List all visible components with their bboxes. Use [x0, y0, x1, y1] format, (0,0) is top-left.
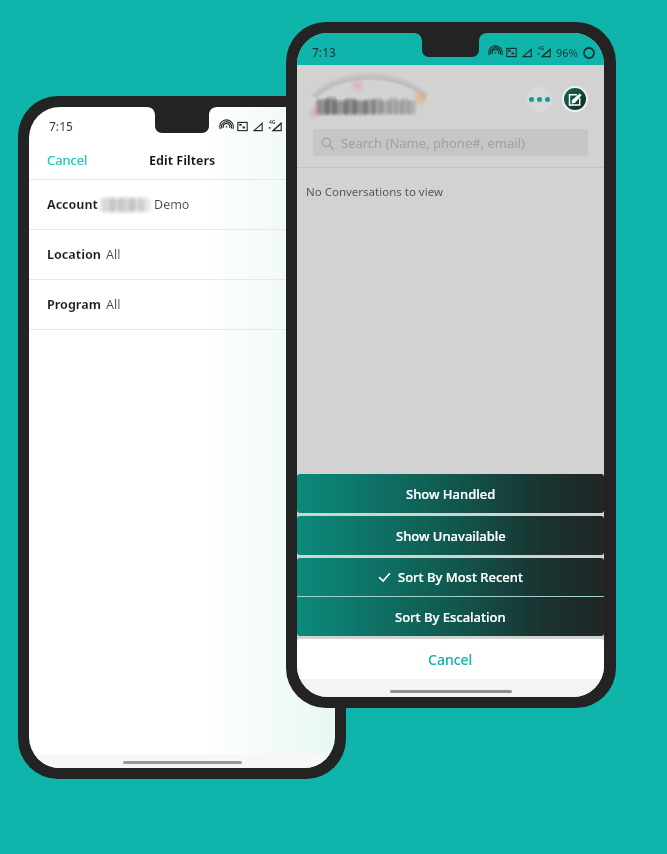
button[interactable]: Sort By Escalation [297, 597, 604, 636]
button[interactable]: More options [527, 87, 552, 112]
staticText: 7:13 [312, 44, 336, 60]
button[interactable]: Program [29, 280, 335, 329]
staticText: All [106, 246, 121, 263]
staticText: Show Handled [406, 485, 496, 503]
button[interactable]: Search (Name, phone#, email) [313, 129, 588, 156]
button[interactable]: Account [29, 180, 335, 229]
staticText: Demo [154, 196, 190, 213]
staticText: Sort By Most Recent [398, 568, 523, 586]
button[interactable]: Location [29, 230, 335, 279]
staticText: 4G [269, 119, 276, 126]
button[interactable]: Show Unavailable [297, 516, 604, 555]
staticText: Cancel [428, 650, 473, 669]
button[interactable]: Compose new message [564, 88, 586, 110]
staticText: Account [47, 196, 99, 213]
button[interactable]: Sort By Most Recent [297, 558, 604, 596]
staticText: Program [47, 296, 101, 313]
staticText: All [106, 296, 121, 313]
button[interactable]: Show Handled [297, 474, 604, 513]
staticText: 96% [556, 45, 578, 60]
staticText: 7:15 [49, 118, 73, 134]
button[interactable]: Cancel [47, 151, 88, 169]
staticText: Show Unavailable [396, 527, 506, 545]
staticText: 96% [287, 119, 309, 134]
staticText: Location [47, 246, 101, 263]
button[interactable]: Cancel [297, 639, 604, 679]
staticText: Search (Name, phone#, email) [341, 134, 525, 152]
staticText: No Conversations to view [306, 184, 443, 200]
staticText: Edit Filters [149, 152, 216, 169]
staticText: 4G [538, 45, 545, 52]
staticText: Sort By Escalation [395, 608, 506, 626]
